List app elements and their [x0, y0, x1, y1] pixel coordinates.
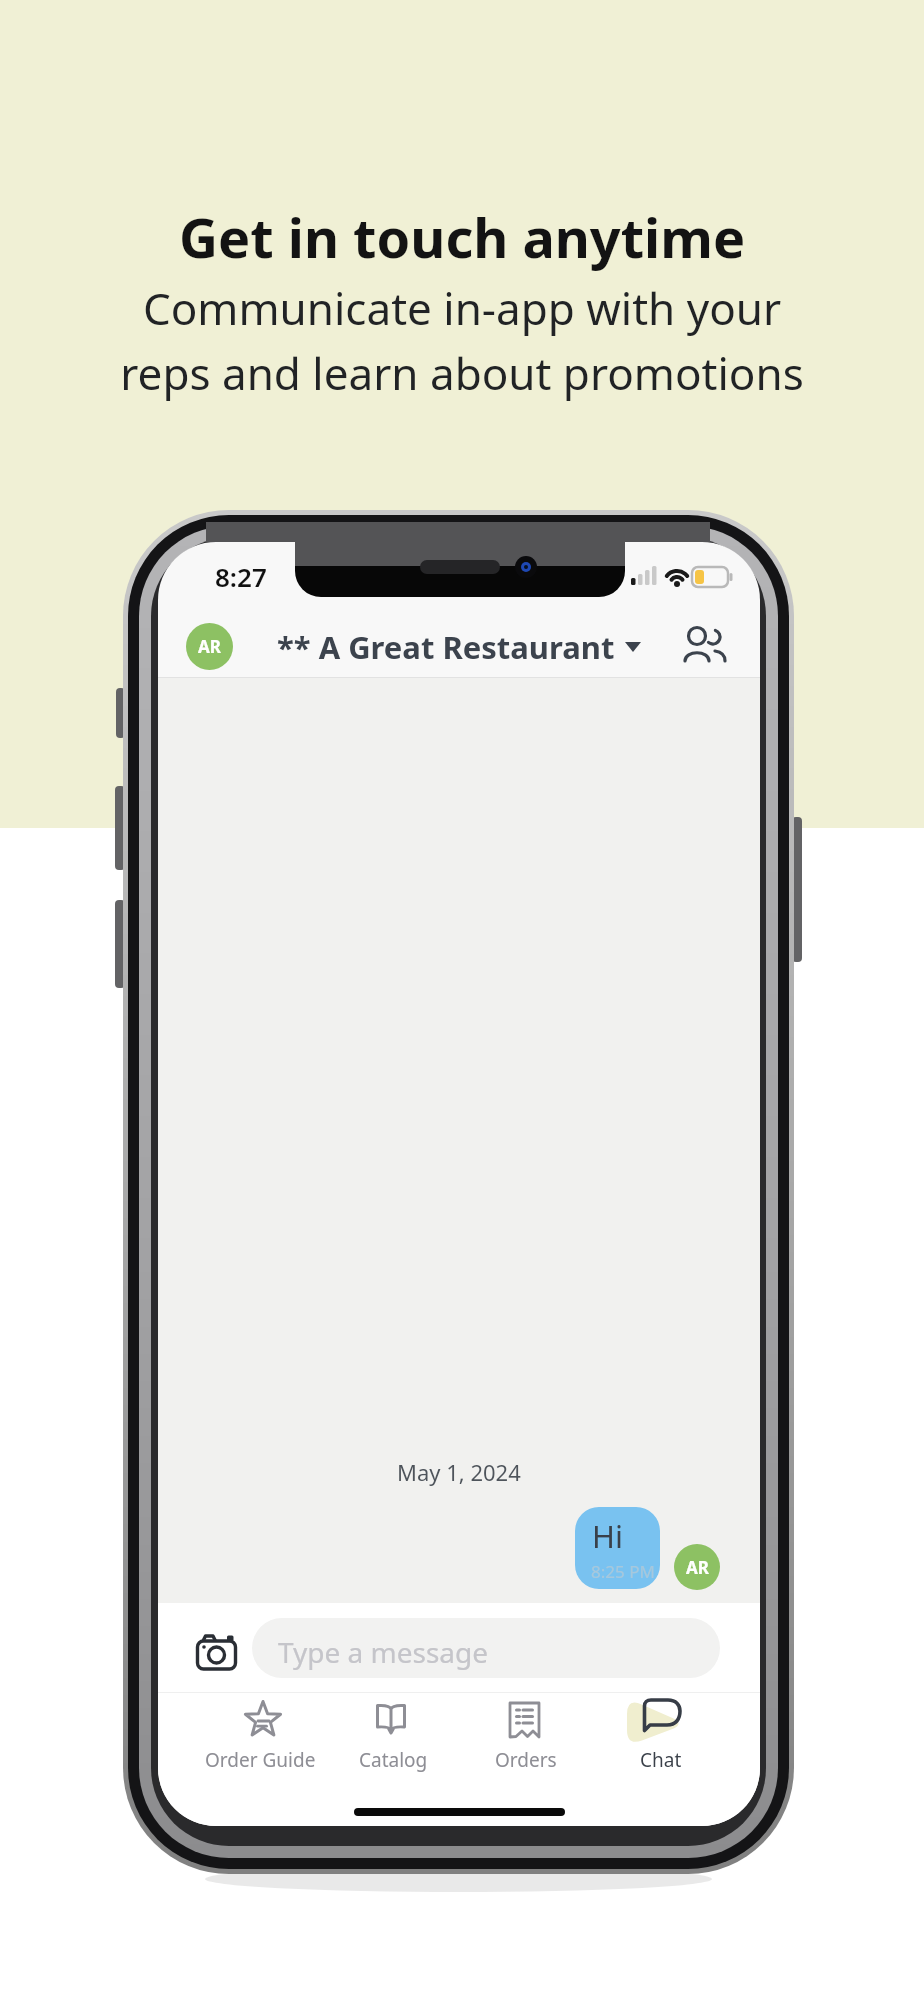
staticText: ** A Great Restaurant [277, 626, 615, 668]
button[interactable]: Orders [461, 1697, 591, 1772]
staticText: Hi [592, 1515, 623, 1557]
staticText: AR [198, 635, 221, 658]
button[interactable]: Order Guide [195, 1697, 325, 1772]
staticText: Get in touch anytime [179, 200, 746, 274]
button[interactable] [196, 1632, 238, 1672]
button[interactable] [683, 625, 729, 671]
staticText: Catalog [359, 1747, 428, 1773]
button[interactable]: Chat [596, 1697, 726, 1772]
staticText: Type a message [278, 1633, 489, 1671]
staticText: 8:25 PM [591, 1560, 655, 1583]
staticText: May 1, 2024 [397, 1457, 521, 1487]
staticText: Chat [640, 1747, 682, 1773]
staticText: Communicate in-app with your reps and le… [120, 278, 804, 403]
staticText: AR [686, 1556, 709, 1579]
button[interactable]: AR [186, 623, 233, 670]
button[interactable]: Catalog [328, 1697, 458, 1772]
button[interactable]: ** A Great Restaurant [277, 626, 641, 668]
staticText: Orders [495, 1747, 557, 1773]
button[interactable]: Type a message [252, 1618, 720, 1678]
staticText: Order Guide [205, 1747, 316, 1773]
staticText: 8:27 [215, 559, 267, 594]
